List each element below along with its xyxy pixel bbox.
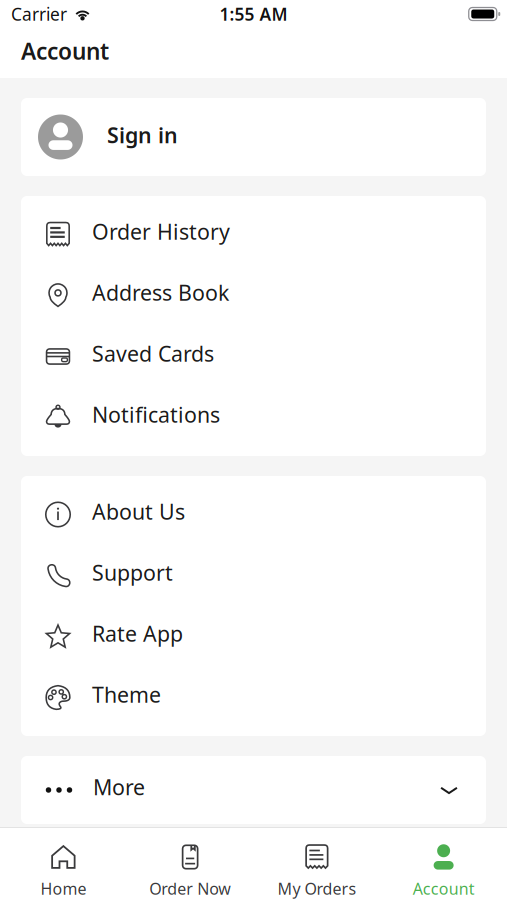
staticText: About Us [92, 497, 185, 526]
staticText: 1:55 AM [219, 2, 287, 25]
button[interactable]: Saved Cards [21, 326, 486, 387]
staticText: Carrier [11, 2, 67, 25]
staticText: Order History [92, 217, 230, 246]
staticText: Theme [92, 680, 161, 709]
button[interactable]: Support [21, 545, 486, 606]
button[interactable]: Home [0, 827, 127, 900]
staticText: Notifications [92, 400, 220, 429]
staticText: My Orders [277, 878, 356, 899]
staticText: Account [413, 878, 475, 899]
staticText: Order Now [149, 878, 231, 899]
staticText: Saved Cards [92, 339, 214, 368]
button[interactable]: Address Book [21, 265, 486, 326]
button[interactable]: More [21, 756, 486, 824]
staticText: Home [40, 878, 86, 899]
button[interactable]: Account [380, 827, 507, 900]
button[interactable]: Order Now [127, 827, 254, 900]
button[interactable]: About Us [21, 484, 486, 545]
staticText: Sign in [107, 121, 178, 149]
button[interactable]: My Orders [253, 827, 380, 900]
button[interactable]: Theme [21, 667, 486, 728]
staticText: Address Book [92, 278, 229, 307]
button[interactable]: Rate App [21, 606, 486, 667]
staticText: Account [21, 36, 109, 66]
button[interactable]: Sign in [21, 98, 486, 176]
staticText: Rate App [92, 619, 183, 648]
staticText: Support [92, 558, 173, 587]
button[interactable]: Notifications [21, 387, 486, 448]
button[interactable]: Order History [21, 204, 486, 265]
staticText: More [93, 773, 145, 801]
